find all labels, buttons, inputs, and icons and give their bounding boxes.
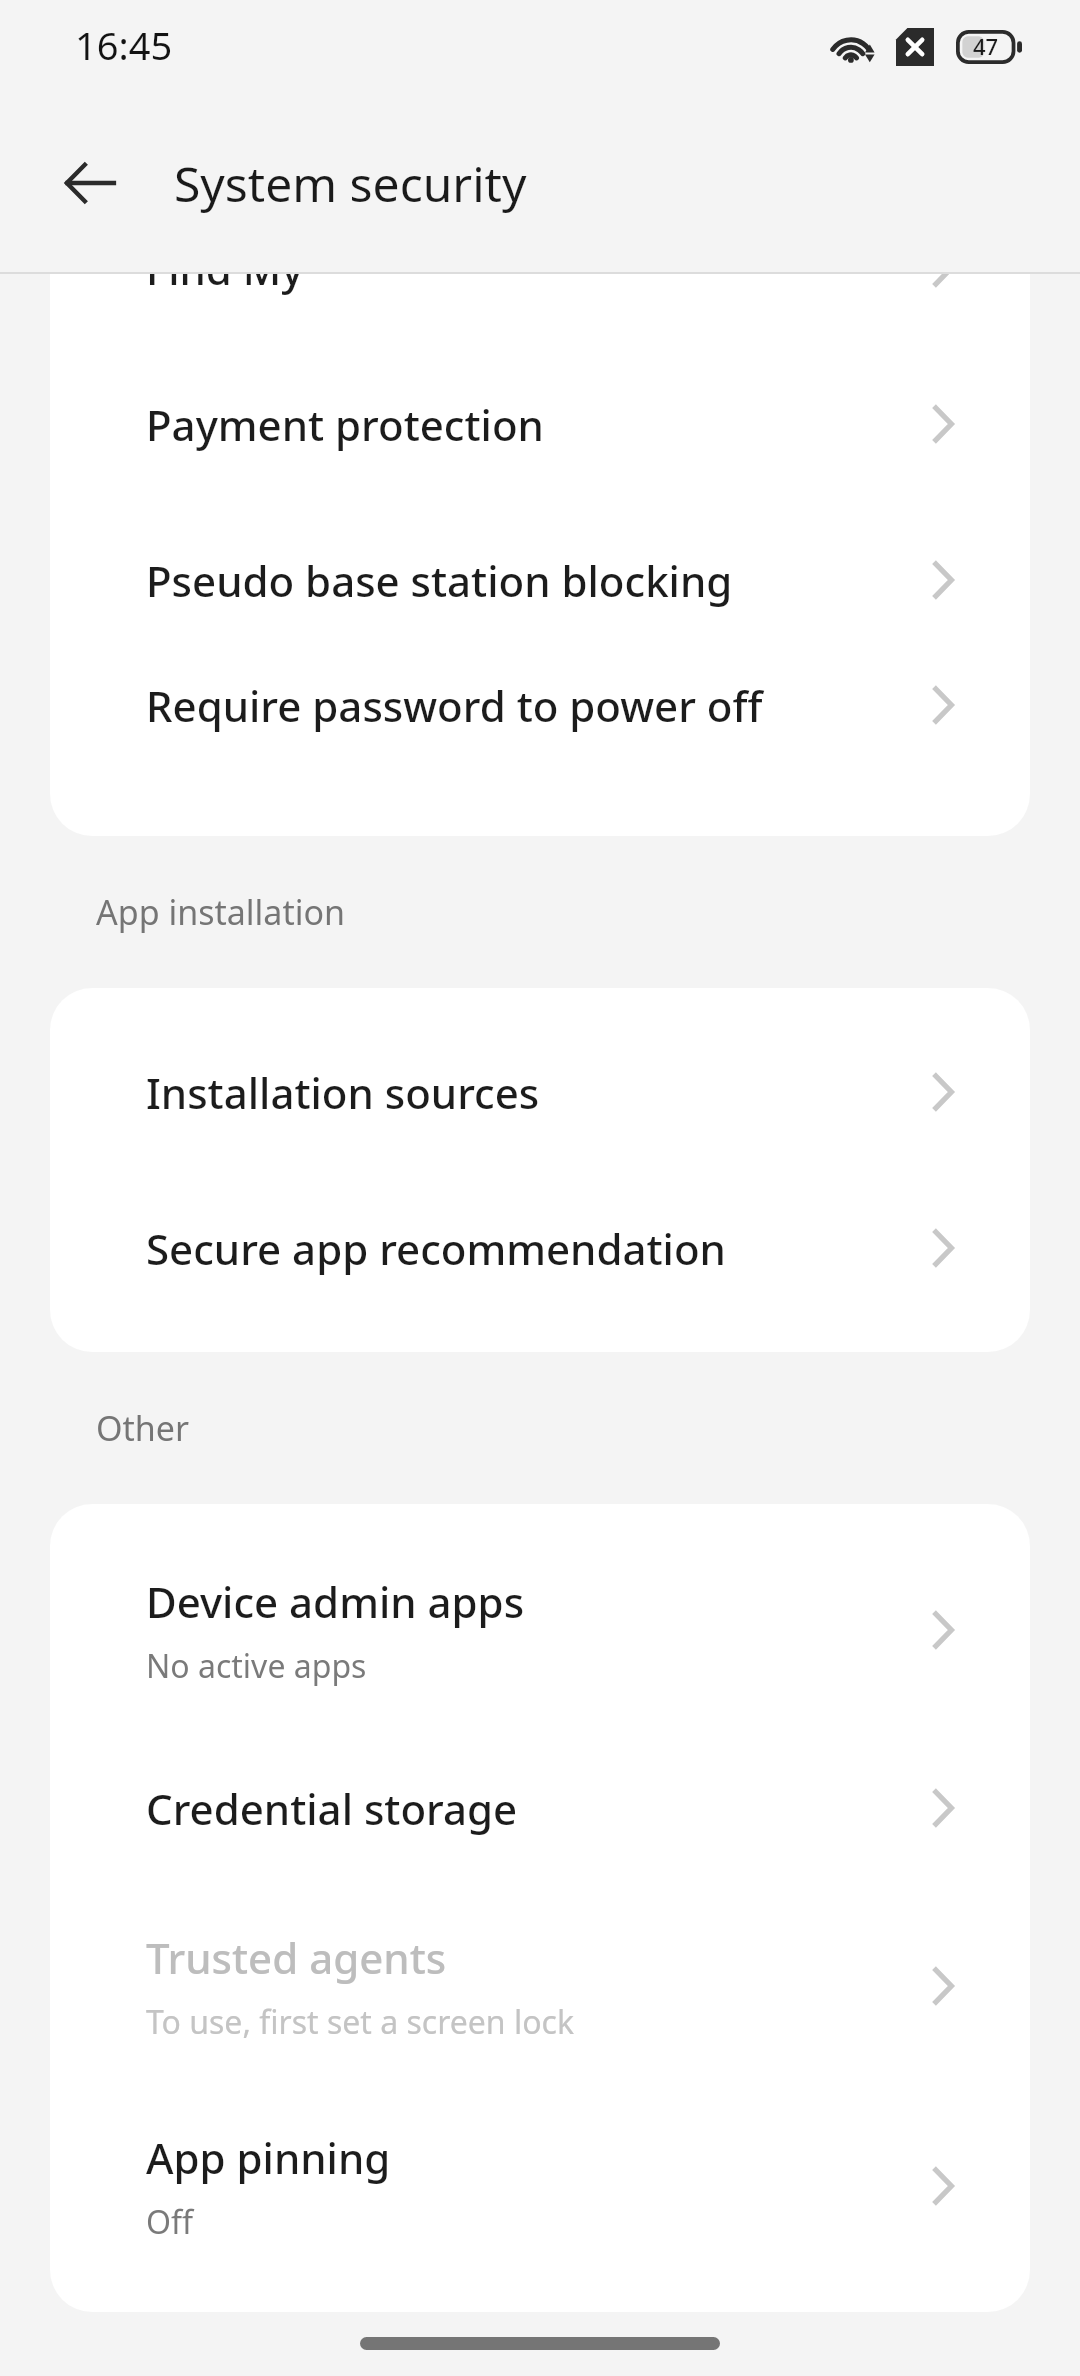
staticText: System security [174, 151, 527, 216]
button[interactable]: Secure app recommendation [50, 1170, 1030, 1326]
staticText: App installation [96, 889, 346, 935]
button[interactable]: Installation sources [50, 1014, 1030, 1170]
staticText: 47 [956, 31, 1015, 61]
button[interactable]: Find My [50, 274, 1030, 346]
staticText: Installation sources [146, 1064, 922, 1121]
staticText: Credential storage [146, 1780, 922, 1837]
staticText: Require password to power off [146, 677, 922, 734]
button[interactable]: Trusted agents [50, 1886, 1030, 2086]
button[interactable]: Pseudo base station blocking [50, 502, 1030, 658]
button[interactable]: Require password to power off [50, 658, 1030, 752]
button[interactable]: App pinning [50, 2086, 1030, 2286]
staticText: App pinning [146, 2129, 391, 2186]
staticText: 16:45 [75, 19, 173, 71]
staticText: Trusted agents [146, 1929, 447, 1986]
staticText: Find My [146, 274, 922, 297]
staticText: Pseudo base station blocking [146, 552, 922, 609]
staticText: No active apps [146, 1644, 367, 1688]
staticText: Payment protection [146, 396, 922, 453]
button[interactable]: Back [40, 133, 140, 233]
staticText: Off [146, 2200, 194, 2244]
staticText: To use, first set a screen lock [146, 2000, 575, 2044]
staticText: Secure app recommendation [146, 1220, 922, 1277]
button[interactable]: Credential storage [50, 1730, 1030, 1886]
button[interactable]: Payment protection [50, 346, 1030, 502]
staticText: Other [96, 1405, 190, 1451]
button[interactable]: Device admin apps [50, 1530, 1030, 1730]
staticText: Device admin apps [146, 1573, 525, 1630]
